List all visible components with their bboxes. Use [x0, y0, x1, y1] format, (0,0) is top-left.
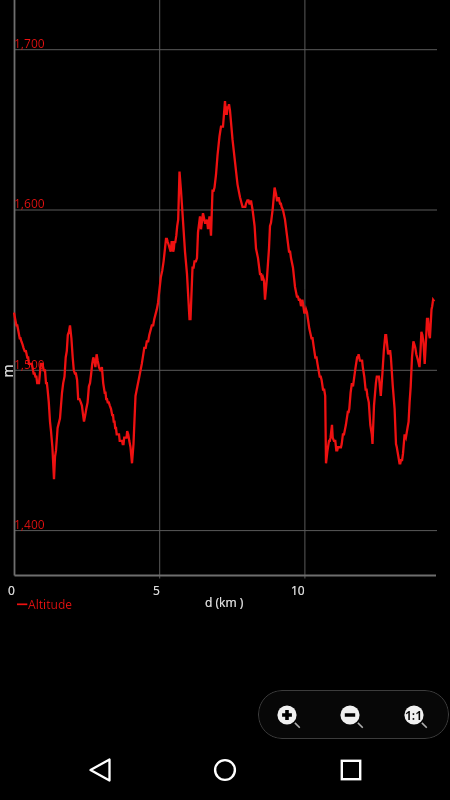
button[interactable]: Home	[201, 746, 249, 794]
staticText: d (km )	[205, 594, 244, 610]
staticText: 5	[153, 582, 160, 598]
button[interactable]: Recents	[327, 746, 375, 794]
staticText: 0	[8, 582, 15, 598]
staticText: Altitude	[28, 596, 73, 612]
button[interactable]: Back	[76, 746, 124, 794]
staticText: 1,400	[14, 516, 45, 532]
button[interactable]: Zoom out	[321, 690, 385, 739]
staticText: m	[0, 363, 16, 377]
staticText: 1,600	[14, 195, 45, 211]
staticText: 1,700	[14, 35, 45, 51]
staticText: 1:1	[405, 707, 423, 723]
button[interactable]: Zoom in	[258, 690, 321, 739]
button[interactable]: Reset zoom	[385, 690, 449, 739]
staticText: 1,500	[14, 356, 45, 372]
staticText: 10	[291, 582, 305, 598]
